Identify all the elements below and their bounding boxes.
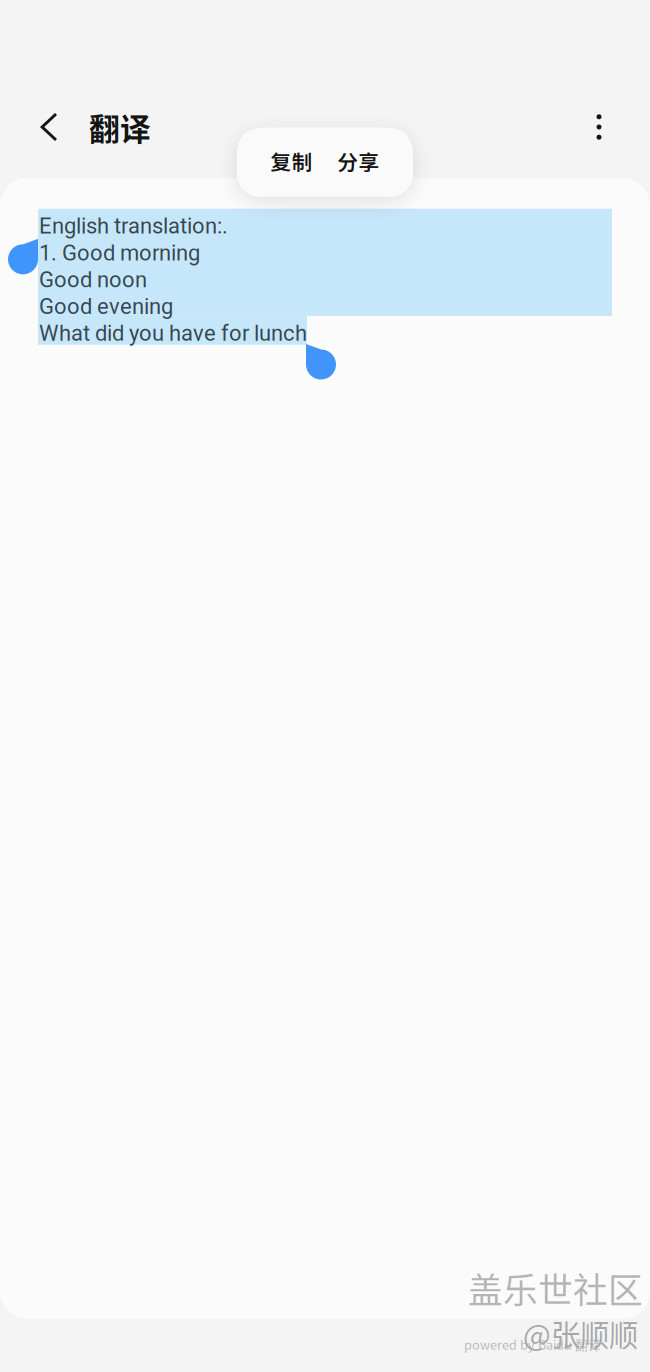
staticText: Good evening [39, 294, 173, 319]
staticText: 盖乐世社区 [468, 1263, 643, 1313]
staticText: English translation:. [39, 213, 228, 239]
button[interactable]: 复制 [258, 127, 325, 194]
staticText: @张顺顺 [523, 1312, 638, 1354]
staticText: Good noon [39, 267, 147, 293]
staticText: What did you have for lunch [39, 320, 307, 346]
button[interactable]: 分享 [325, 127, 392, 194]
button[interactable]: Back [18, 96, 80, 158]
staticText: 翻译 [89, 105, 151, 149]
staticText: 复制 [270, 146, 312, 176]
staticText: powered by Baidu 翻译 [464, 1335, 601, 1353]
button[interactable]: More options [568, 96, 630, 158]
staticText: 分享 [337, 146, 379, 176]
staticText: 1. Good morning [39, 240, 200, 266]
